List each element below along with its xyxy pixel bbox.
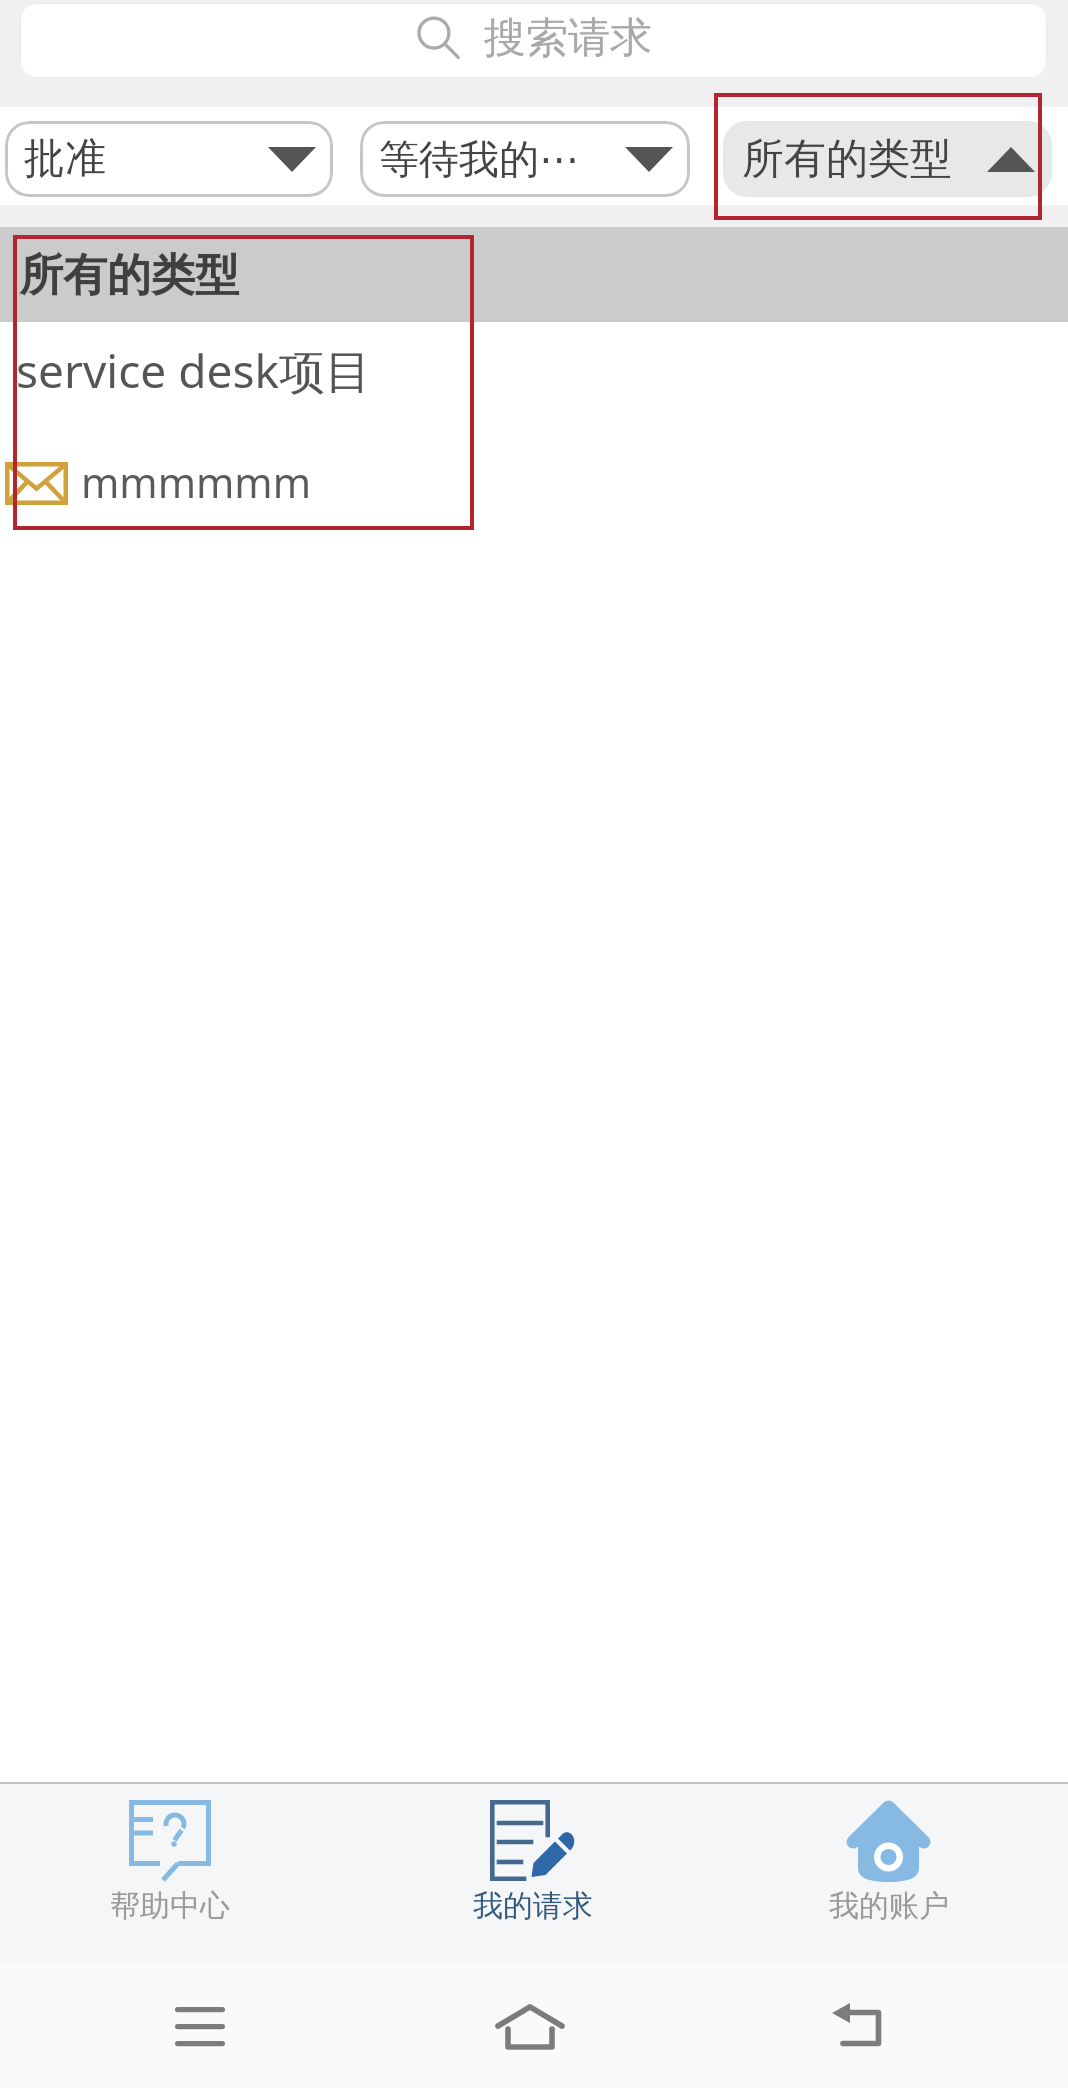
button[interactable]: 批准 bbox=[5, 121, 333, 197]
button[interactable]: 我的账户 bbox=[799, 1784, 979, 1964]
button[interactable]: 等待我的⋯ bbox=[360, 121, 690, 197]
button[interactable]: service desk项目 bbox=[0, 322, 1068, 420]
staticText: 帮助中心 bbox=[110, 1887, 230, 1925]
staticText: 所有的类型 bbox=[742, 133, 952, 186]
staticText: mmmmmm bbox=[81, 454, 312, 510]
button[interactable]: 我的请求 bbox=[443, 1784, 623, 1964]
staticText: 所有的类型 bbox=[19, 248, 239, 303]
button[interactable]: Recents bbox=[110, 1964, 290, 2088]
button[interactable]: 所有的类型 bbox=[0, 227, 1068, 322]
button[interactable]: 所有的类型 bbox=[723, 121, 1052, 197]
button[interactable]: mmmmmm bbox=[0, 420, 1068, 546]
button[interactable]: 帮助中心 bbox=[80, 1784, 260, 1964]
other: 我的请求 bbox=[490, 1800, 576, 1882]
staticText: service desk项目 bbox=[16, 339, 372, 402]
staticText: 批准 bbox=[24, 133, 106, 185]
staticText: 等待我的⋯ bbox=[379, 134, 579, 184]
staticText: 我的请求 bbox=[473, 1887, 593, 1925]
staticText: 我的账户 bbox=[829, 1887, 949, 1925]
button[interactable]: Home bbox=[440, 1964, 620, 2088]
other: 我的账户 bbox=[846, 1800, 932, 1882]
other: 帮助中心 bbox=[127, 1800, 213, 1882]
staticText: 搜索请求 bbox=[484, 12, 652, 65]
button[interactable]: 搜索请求 bbox=[20, 3, 1047, 78]
button[interactable]: Back bbox=[768, 1964, 948, 2088]
